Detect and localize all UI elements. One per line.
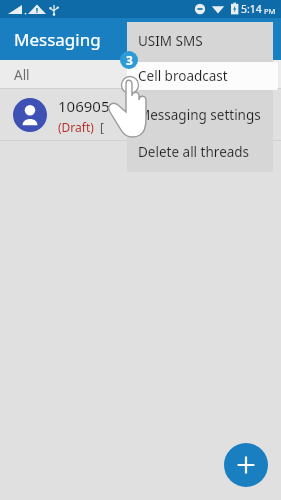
button[interactable]: Delete all threads <box>127 133 273 170</box>
staticText: All <box>14 66 30 84</box>
staticText: 106905 <box>58 96 110 116</box>
staticText: Cell broadcast <box>138 67 228 85</box>
button[interactable]: 106905 <box>0 89 281 141</box>
staticText: Messaging <box>14 28 101 51</box>
staticText: 5:14 <box>241 2 262 16</box>
staticText: (Draft) <box>58 119 94 135</box>
staticText: PM <box>264 6 276 16</box>
button[interactable]: Cell broadcast <box>127 62 278 90</box>
button[interactable]: USIM SMS <box>127 22 273 59</box>
staticText: Messaging settings <box>138 106 261 124</box>
staticText: [ <box>100 119 104 135</box>
button[interactable] <box>127 59 273 96</box>
button[interactable]: Messaging settings <box>127 96 273 133</box>
staticText: 3 <box>126 52 133 68</box>
button[interactable]: All <box>0 60 281 89</box>
button[interactable]: New message <box>224 443 268 487</box>
staticText: Delete all threads <box>138 143 250 161</box>
staticText: USIM SMS <box>138 32 203 50</box>
